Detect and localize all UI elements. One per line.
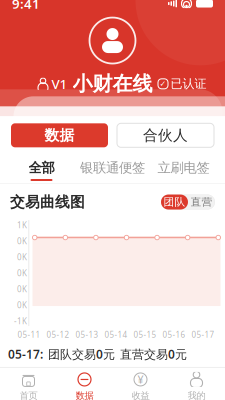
staticText: 0K [17, 284, 27, 294]
staticText: 已认证 [170, 76, 206, 91]
staticText: 0K [17, 236, 27, 246]
staticText: 05-13 [75, 329, 98, 340]
staticText: 团队 [163, 195, 185, 209]
staticText: 收益 [131, 390, 149, 400]
button[interactable]: 立刷电签 [148, 157, 219, 183]
staticText: -1K [14, 316, 27, 326]
button[interactable]: Profile avatar [87, 15, 137, 65]
staticText: 直营交易0元 [120, 346, 187, 362]
staticText: 05-11 [17, 329, 40, 340]
button[interactable]: 数据 [56, 368, 112, 400]
button[interactable]: 数据 [11, 123, 108, 147]
button[interactable]: 银联通便签 [77, 157, 148, 183]
staticText: 05-12 [46, 329, 69, 340]
staticText: 05-17: [8, 346, 43, 362]
staticText: 数据 [44, 126, 74, 144]
button[interactable]: ¥ [112, 368, 168, 400]
button[interactable]: 团队 [161, 194, 188, 209]
button[interactable]: 合伙人 [117, 123, 214, 147]
staticText: 05-14 [104, 329, 127, 340]
staticText: 1K [17, 220, 27, 230]
staticText: ¥ [137, 372, 143, 387]
button[interactable]: 直营 [188, 194, 215, 209]
staticText: 0K [17, 300, 27, 310]
staticText: ✓ [159, 79, 166, 88]
button[interactable]: 我的 [168, 368, 224, 400]
staticText: 小财在线 [72, 71, 152, 96]
staticText: 直营 [190, 195, 212, 209]
staticText: 合伙人 [143, 126, 188, 144]
staticText: V1 [51, 75, 67, 93]
staticText: 银联通便签 [80, 160, 145, 176]
staticText: 立刷电签 [157, 160, 209, 176]
staticText: 9:41 [12, 0, 40, 12]
staticText: 05-16 [162, 329, 185, 340]
staticText: 数据 [75, 390, 93, 400]
staticText: 交易曲线图 [10, 193, 85, 211]
staticText: 我的 [187, 390, 205, 400]
button[interactable]: 全部 [6, 157, 77, 183]
staticText: 全部 [28, 160, 54, 176]
staticText: 0K [17, 268, 27, 278]
staticText: 0K [17, 252, 27, 262]
staticText: 05-17 [191, 329, 214, 340]
button[interactable]: 首页 [0, 368, 56, 400]
staticText: 团队交易0元 [48, 346, 115, 362]
staticText: 首页 [19, 390, 37, 400]
staticText: 05-15 [133, 329, 156, 340]
